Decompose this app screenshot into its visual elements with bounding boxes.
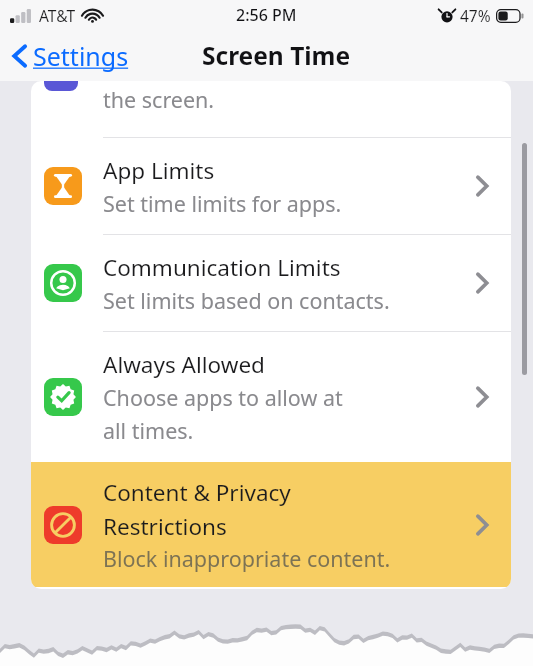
staticText: Communication Limits <box>103 252 341 283</box>
button[interactable]: Communication Limits <box>31 235 511 331</box>
button[interactable]: Always Allowed <box>31 332 511 462</box>
button[interactable]: App Limits <box>31 138 511 234</box>
staticText: App Limits <box>103 155 215 186</box>
staticText: Set time limits for apps. <box>103 189 342 218</box>
staticText: Set limits based on contacts. <box>103 286 390 315</box>
staticText: Screen Time <box>202 39 351 72</box>
staticText: 2:56 PM <box>236 4 297 26</box>
button[interactable]: Content & Privacy Restrictions <box>31 462 511 587</box>
staticText: AT&T <box>39 5 76 26</box>
staticText: 47% <box>460 5 491 26</box>
staticText: Settings <box>33 39 129 73</box>
staticText: Choose apps to allow at all times. <box>103 383 343 445</box>
staticText: Block inappropriate content. <box>103 544 391 573</box>
button[interactable]: Settings <box>8 35 133 77</box>
staticText: Content & Privacy Restrictions <box>103 477 291 541</box>
button[interactable]: the screen. <box>31 81 511 137</box>
staticText: the screen. <box>103 85 215 114</box>
staticText: Always Allowed <box>103 349 265 380</box>
